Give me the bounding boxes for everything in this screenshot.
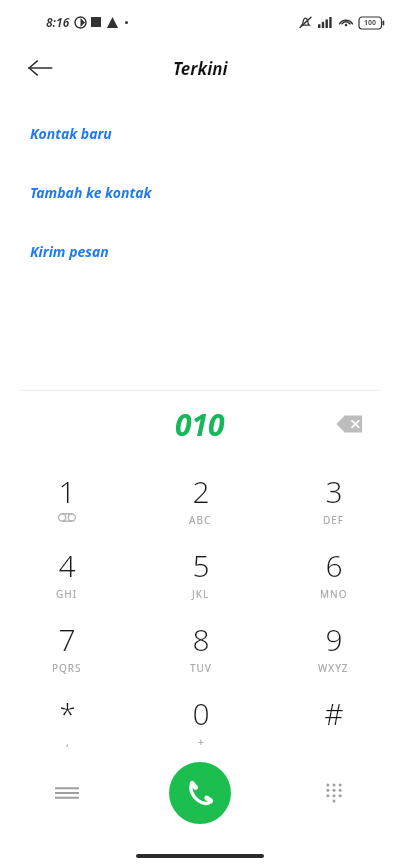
button[interactable]: 6 — [267, 536, 400, 610]
staticText: ABC — [189, 513, 212, 527]
button[interactable]: 2 — [134, 462, 267, 536]
staticText: 2 — [192, 471, 210, 512]
button[interactable]: Kontak baru — [0, 118, 400, 148]
button[interactable]: More options — [0, 756, 133, 830]
button[interactable]: Backspace — [328, 402, 372, 446]
staticText: 4 — [58, 545, 76, 586]
staticText: 100 — [364, 18, 377, 28]
staticText: GHI — [56, 587, 78, 601]
staticText: 8 — [192, 619, 210, 660]
staticText: * — [59, 693, 76, 734]
staticText: 8:16 — [46, 14, 70, 30]
staticText: Kontak baru — [30, 124, 112, 143]
staticText: , — [66, 735, 70, 749]
staticText: JKL — [192, 587, 210, 601]
staticText: 1 — [58, 471, 76, 512]
staticText: 9 — [325, 619, 343, 660]
button[interactable]: 1 — [0, 462, 134, 536]
staticText: MNO — [320, 587, 348, 601]
button[interactable]: Back — [18, 46, 62, 90]
button[interactable]: Call — [169, 762, 231, 824]
button[interactable]: * — [0, 684, 134, 758]
button[interactable]: 5 — [134, 536, 267, 610]
button[interactable]: Hide dialpad — [267, 756, 400, 830]
staticText: Tambah ke kontak — [30, 183, 152, 202]
button[interactable]: 4 — [0, 536, 134, 610]
button[interactable]: 9 — [267, 610, 400, 684]
staticText: 3 — [325, 471, 343, 512]
button[interactable]: # — [267, 684, 400, 758]
staticText: + — [198, 735, 205, 749]
staticText: 6 — [325, 545, 343, 586]
staticText: DEF — [323, 513, 345, 527]
button[interactable]: 8 — [134, 610, 267, 684]
staticText: PQRS — [52, 661, 82, 675]
button[interactable]: 0 — [134, 684, 267, 758]
staticText: 010 — [175, 404, 225, 445]
button[interactable]: Tambah ke kontak — [0, 177, 400, 207]
staticText: # — [324, 693, 344, 734]
button[interactable]: 3 — [267, 462, 400, 536]
staticText: 7 — [58, 619, 76, 660]
staticText: 5 — [192, 545, 210, 586]
staticText: 0 — [192, 693, 210, 734]
staticText: Kirim pesan — [30, 242, 109, 261]
button[interactable]: 7 — [0, 610, 134, 684]
staticText: WXYZ — [318, 661, 349, 675]
staticText: Terkini — [173, 57, 228, 80]
staticText: TUV — [190, 661, 212, 675]
button[interactable]: Kirim pesan — [0, 236, 400, 266]
